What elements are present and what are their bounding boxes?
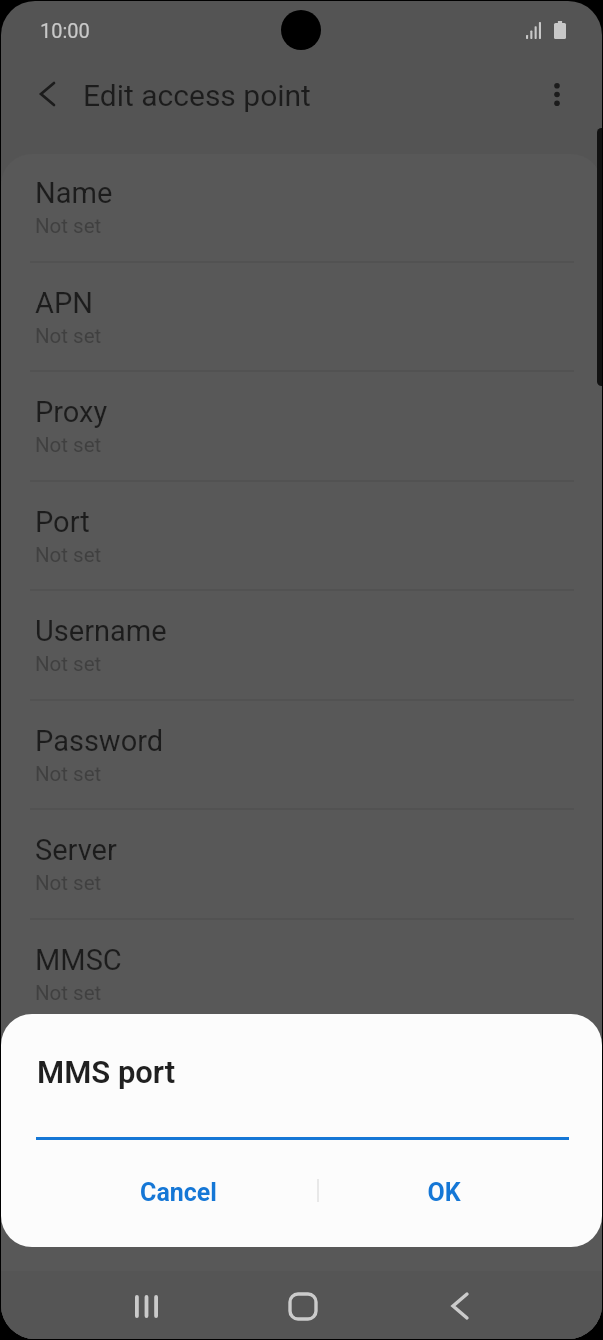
staticText: Edit access point <box>83 78 311 113</box>
button[interactable]: Port <box>1 483 602 593</box>
staticText: Password <box>35 724 164 758</box>
staticText: Server <box>35 833 117 867</box>
button[interactable]: Name <box>1 154 602 264</box>
button[interactable]: APN <box>1 264 602 374</box>
staticText: Not set <box>35 762 102 786</box>
button[interactable]: Server <box>1 811 602 921</box>
button[interactable]: Back <box>429 1275 491 1337</box>
staticText: Not set <box>35 324 102 348</box>
button[interactable]: Home <box>272 1275 334 1337</box>
staticText: Cancel <box>140 1178 217 1207</box>
staticText: Proxy <box>35 395 108 429</box>
staticText: Username <box>35 614 167 648</box>
staticText: Not set <box>35 214 102 238</box>
button[interactable]: MMS port <box>1 1140 602 1250</box>
staticText: Not set <box>35 433 102 457</box>
staticText: Not set <box>35 871 102 895</box>
staticText: APN <box>35 286 93 320</box>
button[interactable]: Recents <box>115 1275 177 1337</box>
staticText: Not set <box>35 543 102 567</box>
staticText: Port <box>35 505 90 539</box>
button[interactable]: Navigate up <box>23 70 71 118</box>
staticText: Not set <box>35 652 102 676</box>
staticText: MMS port <box>37 1054 176 1090</box>
button[interactable]: MMS proxy <box>1 1030 602 1140</box>
staticText: OK <box>427 1178 461 1207</box>
staticText: 10:00 <box>40 19 90 42</box>
button[interactable]: MMSC <box>1 921 602 1031</box>
button[interactable]: Cancel <box>37 1160 319 1224</box>
button[interactable]: OK <box>321 1160 567 1224</box>
staticText: Not set <box>35 981 102 1005</box>
staticText: MMS port <box>35 1162 163 1196</box>
staticText: MMS proxy <box>35 1052 181 1086</box>
button[interactable]: Proxy <box>1 373 602 483</box>
button[interactable]: More options <box>533 70 581 118</box>
button[interactable]: Password <box>1 702 602 812</box>
staticText: Name <box>35 176 113 210</box>
staticText: MMSC <box>35 943 122 977</box>
button[interactable]: Username <box>1 592 602 702</box>
